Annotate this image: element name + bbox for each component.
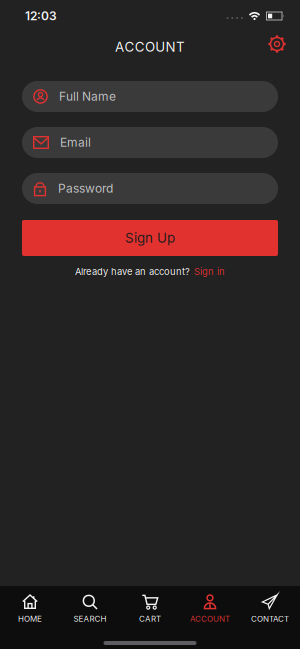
staticText: 12:03 — [25, 9, 57, 23]
staticText: CART — [139, 614, 161, 623]
staticText: Sign in — [194, 266, 225, 277]
button[interactable]: ACCOUNT — [180, 594, 240, 623]
button[interactable]: Password — [22, 173, 278, 204]
staticText: Email — [60, 135, 91, 150]
button[interactable]: SEARCH — [60, 594, 120, 623]
button[interactable]: CART — [120, 594, 180, 623]
staticText: SEARCH — [73, 614, 106, 623]
button[interactable]: HOME — [0, 594, 60, 623]
button[interactable]: Sign Up — [22, 220, 278, 256]
staticText: ACCOUNT — [190, 614, 230, 623]
button[interactable]: CONTACT — [240, 594, 300, 623]
staticText: CONTACT — [251, 614, 289, 623]
button[interactable]: Already have an account? — [75, 266, 225, 277]
staticText: Password — [58, 181, 113, 196]
staticText: HOME — [18, 614, 42, 623]
staticText: Sign Up — [125, 230, 175, 246]
staticText: Full Name — [59, 89, 116, 104]
staticText: ACCOUNT — [115, 39, 185, 55]
button[interactable]: Settings — [268, 35, 286, 53]
button[interactable]: Email — [22, 127, 278, 158]
button[interactable]: Full Name — [22, 81, 278, 112]
staticText: Already have an account? — [75, 266, 190, 277]
